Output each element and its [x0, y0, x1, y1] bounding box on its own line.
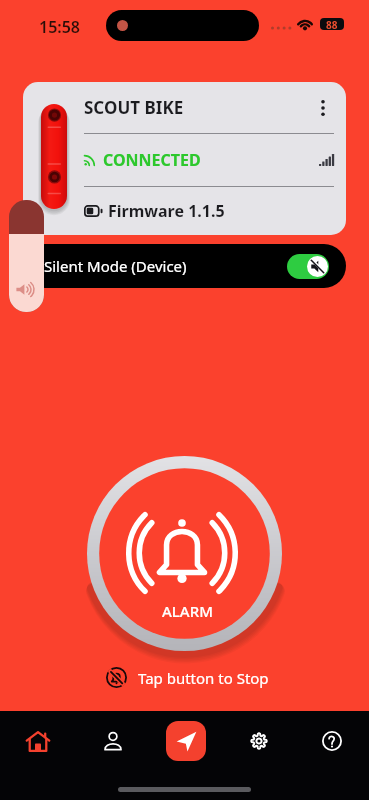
button[interactable]: Volume [9, 200, 44, 312]
staticText: SCOUT BIKE [84, 96, 184, 119]
staticText: ALARM [162, 601, 213, 621]
button[interactable]: More options [312, 97, 334, 119]
button[interactable]: Alarm [87, 456, 282, 651]
staticText: CONNECTED [103, 149, 201, 171]
staticText: Firmware 1.1.5 [108, 200, 225, 222]
button[interactable]: Profile [88, 716, 138, 766]
staticText: 88 [326, 18, 338, 30]
button[interactable]: Silent Mode (Device) [23, 244, 346, 288]
staticText: Tap button to Stop [138, 668, 269, 688]
staticText: 15:58 [39, 16, 81, 38]
button[interactable]: Help [307, 716, 357, 766]
button[interactable]: Track [166, 721, 206, 761]
staticText: Silent Mode (Device) [44, 256, 187, 276]
button[interactable]: Settings [234, 716, 284, 766]
button[interactable]: Home [13, 716, 63, 766]
